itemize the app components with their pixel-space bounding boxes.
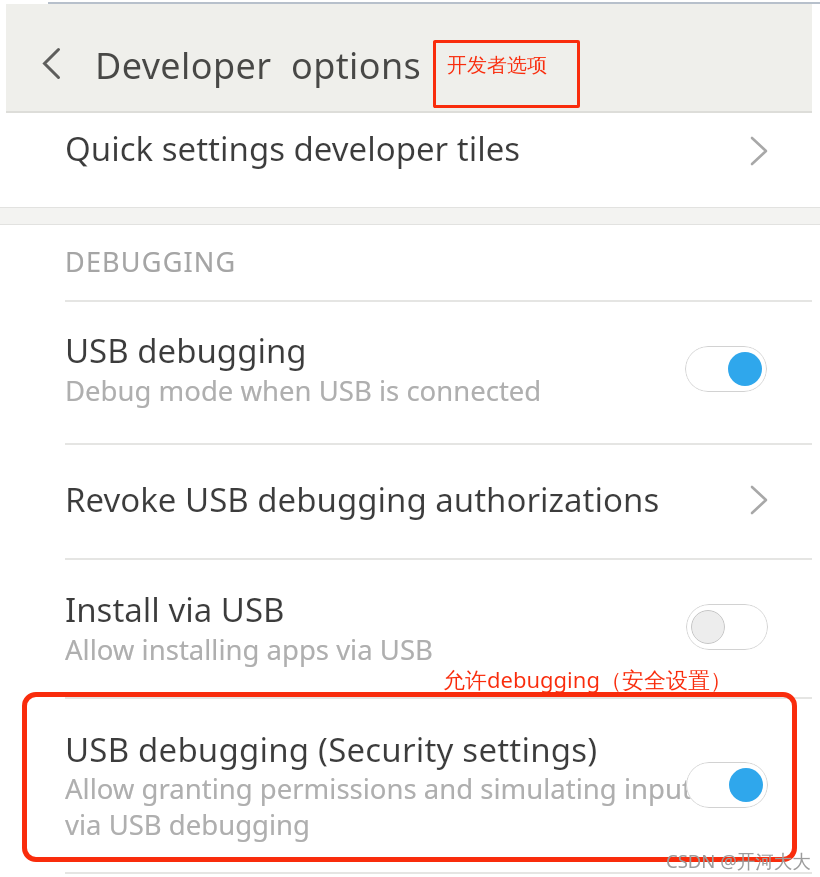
- staticText: USB debugging: [65, 328, 307, 373]
- button[interactable]: [686, 762, 768, 808]
- staticText: Allow installing apps via USB: [65, 631, 433, 668]
- staticText: DEBUGGING: [65, 243, 237, 280]
- staticText: Allow granting permissions and simulatin…: [65, 770, 692, 807]
- staticText: CSDN @开河大大: [666, 848, 811, 873]
- staticText: Developer options: [95, 41, 422, 90]
- staticText: Quick settings developer tiles: [65, 126, 521, 171]
- button[interactable]: [686, 604, 768, 650]
- button[interactable]: Revoke USB debugging authorizations: [0, 444, 820, 558]
- staticText: Debug mode when USB is connected: [65, 372, 542, 409]
- button[interactable]: Quick settings developer tiles: [0, 114, 820, 207]
- button[interactable]: USB debugging (Security settings): [0, 698, 820, 862]
- button[interactable]: [685, 346, 767, 392]
- button[interactable]: Install via USB: [0, 559, 820, 692]
- button[interactable]: [30, 38, 74, 92]
- staticText: Revoke USB debugging authorizations: [65, 477, 660, 522]
- staticText: via USB debugging: [65, 806, 311, 843]
- staticText: 允许debugging（安全设置）: [443, 664, 732, 694]
- staticText: 开发者选项: [447, 53, 547, 78]
- staticText: Install via USB: [65, 587, 285, 632]
- staticText: USB debugging (Security settings): [65, 727, 598, 772]
- button[interactable]: USB debugging: [0, 301, 820, 443]
